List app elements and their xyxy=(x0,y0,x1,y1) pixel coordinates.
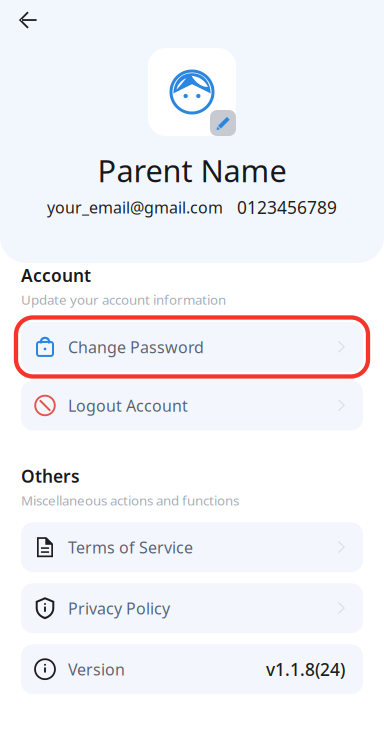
staticText: Parent Name xyxy=(97,150,286,191)
staticText: your_email@gmail.com xyxy=(47,197,223,218)
staticText: v1.1.8(24) xyxy=(266,658,345,681)
button[interactable]: Privacy Policy xyxy=(21,583,363,633)
staticText: Others xyxy=(21,464,80,487)
staticText: Terms of Service xyxy=(68,537,193,558)
staticText: Change Password xyxy=(68,336,204,357)
button[interactable]: Change Password xyxy=(21,322,363,372)
staticText: 0123456789 xyxy=(237,196,337,219)
button[interactable]: Terms of Service xyxy=(21,522,363,572)
staticText: Privacy Policy xyxy=(68,598,170,619)
staticText: Version xyxy=(68,659,125,680)
staticText: Logout Account xyxy=(68,395,188,416)
staticText: Update your account information xyxy=(21,291,226,308)
staticText: Account xyxy=(21,264,91,287)
staticText: Miscellaneous actions and functions xyxy=(21,491,239,509)
button[interactable]: Version xyxy=(21,644,363,694)
button[interactable]: Logout Account xyxy=(21,380,363,430)
button[interactable]: Back xyxy=(0,3,63,37)
